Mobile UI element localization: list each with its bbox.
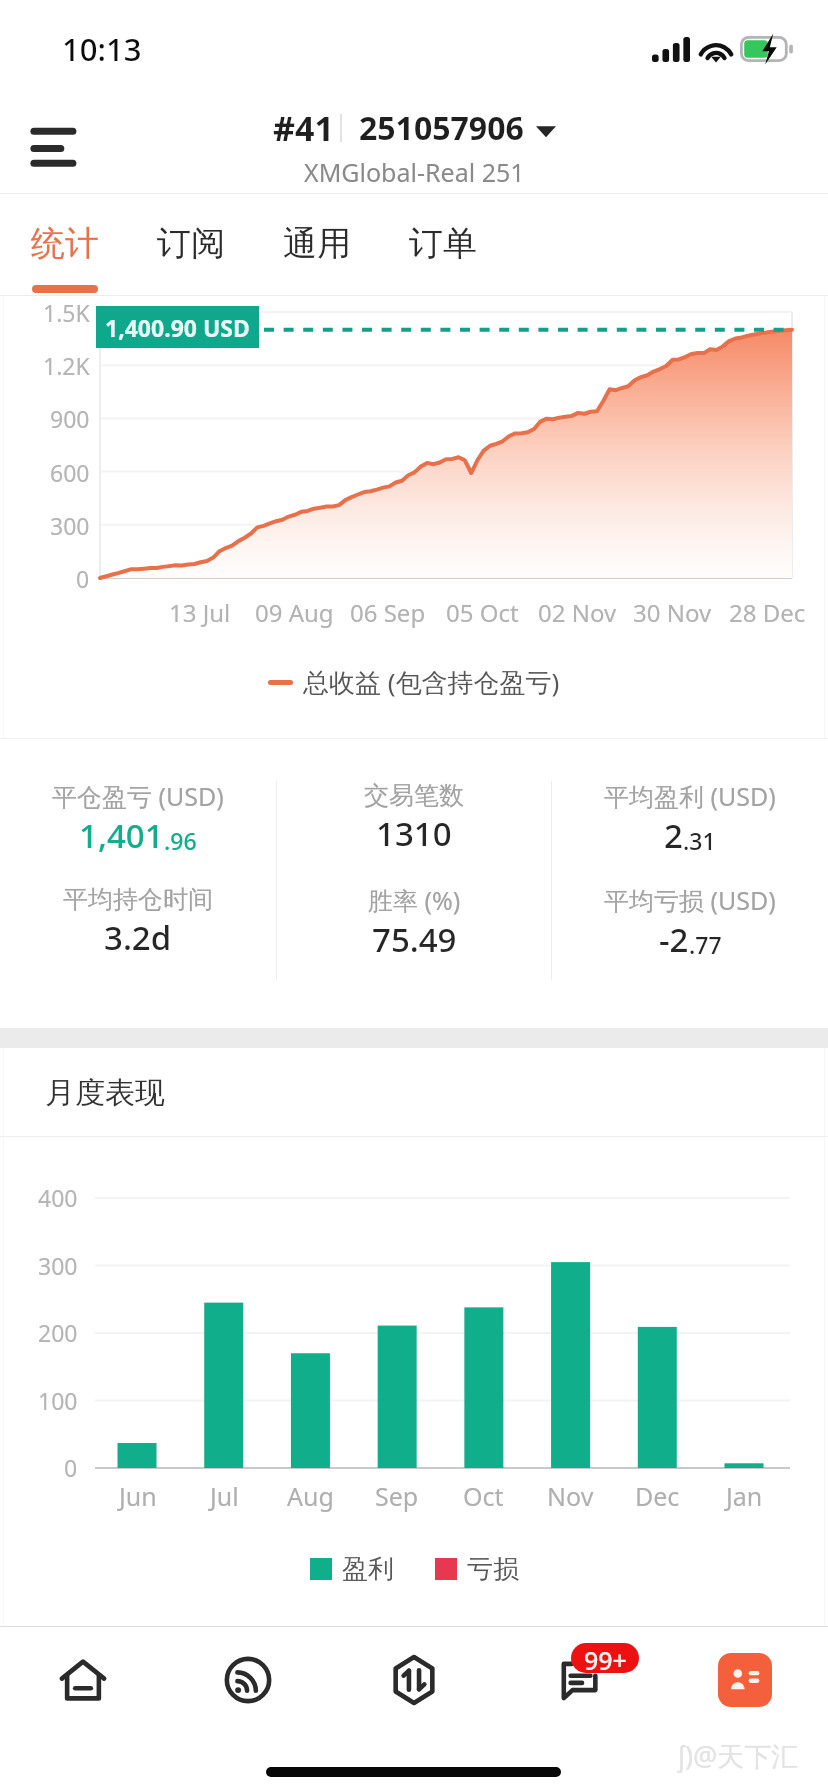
staticText: Sep [375, 1479, 419, 1513]
staticText: 胜率 (%) [368, 883, 461, 917]
staticText: 2 [664, 813, 683, 858]
staticText: 0 [76, 563, 90, 593]
staticText: 13 Jul [169, 596, 231, 629]
staticText: 1,401 [79, 813, 164, 858]
staticText: 1.5K [43, 297, 90, 327]
button[interactable]: 通用 [283, 194, 351, 295]
staticText: 订单 [409, 222, 477, 265]
staticText: -2 [659, 917, 689, 962]
staticText: ʃ)@天下汇 [678, 1737, 799, 1774]
staticText: 通用 [283, 222, 351, 265]
staticText: 3.2d [104, 915, 172, 960]
staticText: 10:13 [62, 28, 142, 70]
staticText: 75.49 [372, 917, 457, 962]
staticText: 平均盈利 (USD) [604, 779, 776, 813]
staticText: Jan [726, 1479, 763, 1513]
staticText: Jun [119, 1479, 157, 1513]
staticText: XMGlobal-Real 251 [304, 155, 525, 189]
staticText: Jul [210, 1479, 239, 1513]
staticText: Dec [635, 1479, 680, 1513]
staticText: 300 [50, 510, 90, 540]
button[interactable]: 平仓盈亏 (USD) [0, 766, 276, 870]
staticText: 600 [50, 457, 90, 487]
staticText: .96 [164, 825, 197, 856]
staticText: 900 [50, 403, 90, 433]
staticText: 251057906 [359, 106, 524, 150]
staticText: 1.2K [43, 350, 90, 380]
staticText: .77 [689, 929, 722, 960]
button[interactable]: Menu [14, 106, 92, 184]
staticText: 盈利 [342, 1553, 394, 1586]
staticText: 28 Dec [729, 596, 806, 629]
staticText: 300 [38, 1250, 78, 1280]
staticText: Oct [463, 1479, 504, 1513]
staticText: 订阅 [157, 222, 225, 265]
button[interactable]: Account [718, 1653, 772, 1707]
staticText: .31 [683, 825, 716, 856]
staticText: Nov [547, 1479, 594, 1513]
staticText: 交易笔数 [364, 780, 464, 811]
staticText: 100 [38, 1385, 78, 1415]
staticText: 09 Aug [255, 596, 334, 629]
button[interactable]: Trade [366, 1632, 462, 1728]
button[interactable]: 平均持仓时间 [0, 870, 276, 974]
staticText: 总收益 (包含持仓盈亏) [303, 664, 560, 700]
button[interactable]: 统计 [31, 194, 99, 295]
staticText: 30 Nov [633, 596, 712, 629]
staticText: 1310 [376, 811, 452, 856]
staticText: 1,400.90 USD [105, 312, 250, 343]
button[interactable]: Home [35, 1632, 131, 1728]
staticText: 02 Nov [538, 596, 617, 629]
button[interactable]: Messages [531, 1632, 627, 1728]
button[interactable]: Signals [200, 1632, 296, 1728]
staticText: #41 [273, 105, 334, 151]
staticText: 99+ [584, 1643, 627, 1673]
button[interactable]: 胜率 (%) [276, 870, 552, 974]
staticText: 0 [64, 1452, 78, 1482]
staticText: Aug [287, 1479, 334, 1513]
staticText: 亏损 [467, 1553, 519, 1586]
button[interactable]: 订阅 [157, 194, 225, 295]
staticText: 200 [38, 1317, 78, 1347]
staticText: 平均持仓时间 [63, 884, 213, 915]
staticText: 400 [38, 1182, 78, 1212]
staticText: 06 Sep [350, 596, 426, 629]
button[interactable]: 平均盈利 (USD) [552, 766, 828, 870]
staticText: 平均亏损 (USD) [604, 883, 776, 917]
staticText: 平仓盈亏 (USD) [52, 779, 224, 813]
staticText: 统计 [31, 222, 99, 265]
staticText: 月度表现 [45, 1074, 165, 1112]
button[interactable]: 平均亏损 (USD) [552, 870, 828, 974]
button[interactable]: 交易笔数 [276, 766, 552, 870]
button[interactable]: 订单 [409, 194, 477, 295]
staticText: 05 Oct [446, 596, 519, 629]
